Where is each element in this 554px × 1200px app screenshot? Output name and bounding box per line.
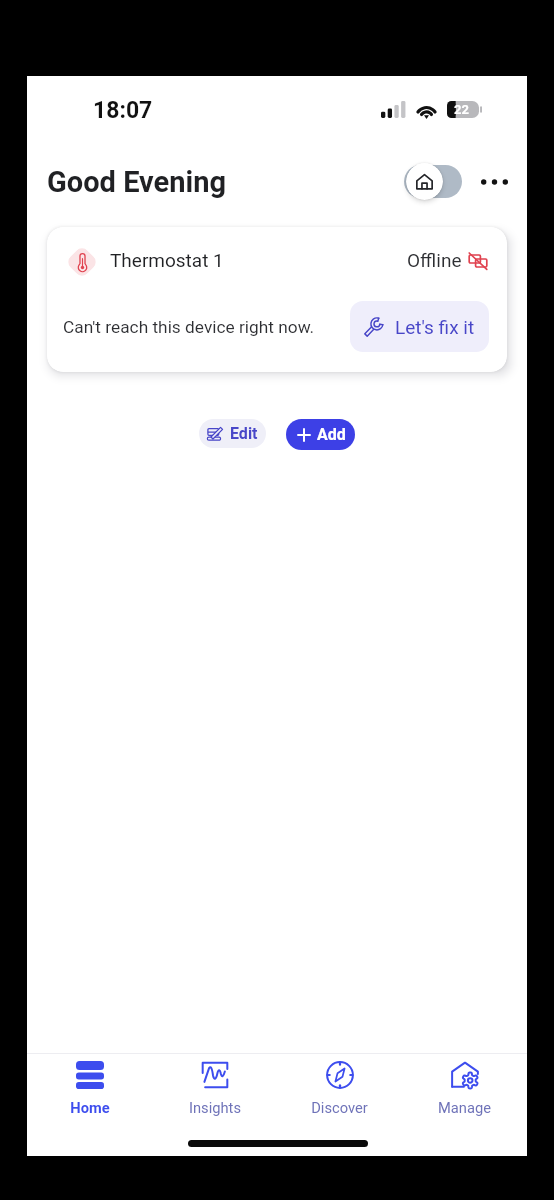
staticText: Add: [317, 425, 346, 444]
button[interactable]: Edit: [199, 419, 266, 448]
staticText: Edit: [230, 424, 258, 443]
staticText: 22: [454, 102, 469, 117]
staticText: Good Evening: [47, 165, 226, 199]
button[interactable]: Manage: [402, 1054, 527, 1129]
staticText: Thermostat 1: [110, 249, 224, 271]
button[interactable]: Home: [27, 1054, 152, 1129]
button[interactable]: Insights: [152, 1054, 277, 1129]
button[interactable]: Let's fix it: [350, 301, 489, 352]
staticText: Insights: [189, 1099, 241, 1116]
staticText: Discover: [311, 1099, 368, 1116]
staticText: Offline: [407, 249, 462, 271]
staticText: Manage: [438, 1099, 491, 1116]
button[interactable]: Home: [406, 163, 443, 200]
button[interactable]: Discover: [277, 1054, 402, 1129]
button[interactable]: Add: [286, 419, 355, 450]
button[interactable]: Thermostat 1: [47, 227, 507, 372]
staticText: Home: [70, 1099, 110, 1116]
staticText: 18:07: [93, 97, 153, 124]
staticText: Let's fix it: [395, 316, 475, 338]
button[interactable]: More options: [473, 168, 515, 196]
staticText: Can't reach this device right now.: [63, 317, 315, 337]
button[interactable]: Home mode toggle: [404, 165, 462, 198]
